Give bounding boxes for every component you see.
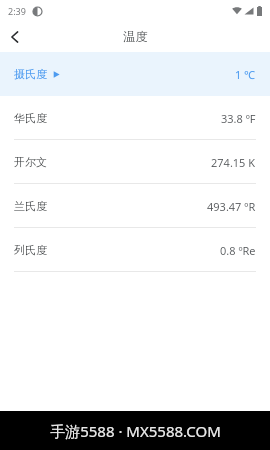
button[interactable]: 列氏度 (0, 228, 270, 272)
button[interactable]: 开尔文 (0, 140, 270, 184)
staticText: 33.8 ºF (221, 111, 256, 126)
staticText: 摄氏度 (14, 67, 47, 81)
staticText: 温度 (123, 29, 148, 45)
staticText: 兰氏度 (14, 199, 47, 213)
button[interactable]: 兰氏度 (0, 184, 270, 228)
staticText: 手游5588 · MX5588.COM (50, 421, 221, 441)
staticText: 493.47 ºR (207, 199, 256, 214)
staticText: 274.15 K (211, 155, 256, 170)
staticText: 开尔文 (14, 155, 47, 169)
button[interactable]: 华氏度 (0, 96, 270, 140)
staticText: 0.8 ºRe (220, 243, 256, 258)
button[interactable]: Back (0, 22, 30, 52)
staticText: 华氏度 (14, 111, 47, 125)
staticText: 1 ℃ (235, 67, 256, 82)
staticText: 2:39 (8, 5, 26, 17)
staticText: 列氏度 (14, 243, 47, 257)
button[interactable]: 摄氏度 (0, 52, 270, 96)
